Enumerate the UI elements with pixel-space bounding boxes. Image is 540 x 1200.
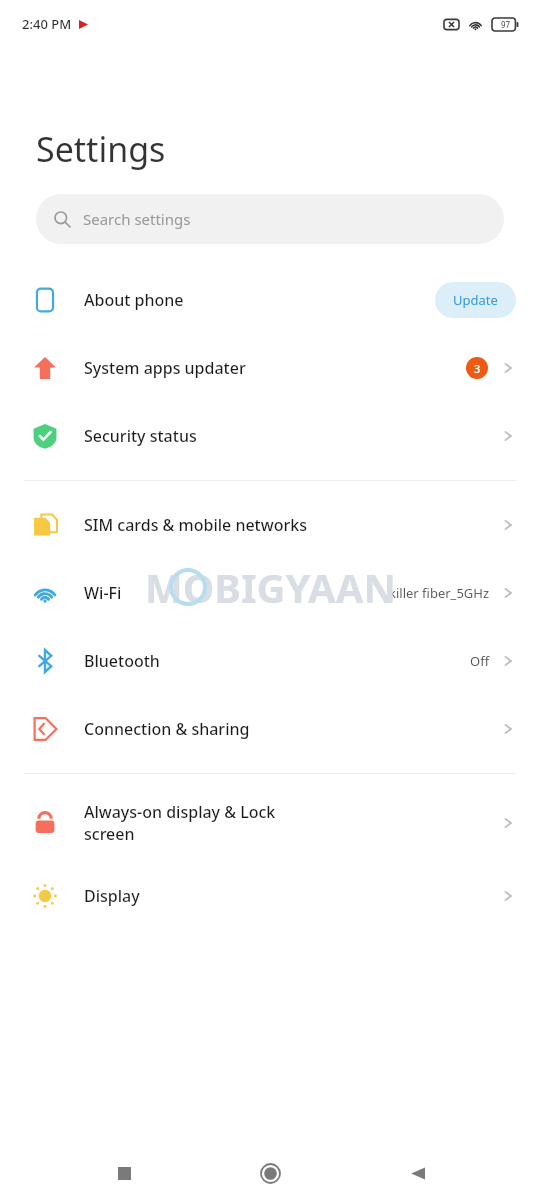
button[interactable]: Wi-Fi: [0, 559, 540, 627]
button[interactable]: Back: [394, 1150, 440, 1196]
button[interactable]: Update: [435, 282, 516, 318]
staticText: Update: [453, 291, 498, 309]
button[interactable]: Bluetooth: [0, 627, 540, 695]
staticText: System apps updater: [84, 357, 466, 379]
staticText: SIM cards & mobile networks: [84, 514, 500, 536]
button[interactable]: Search settings: [36, 194, 504, 244]
staticText: Search settings: [83, 209, 191, 229]
button[interactable]: SIM cards & mobile networks: [0, 491, 540, 559]
staticText: MOBIGYAAN: [145, 560, 396, 614]
staticText: About phone: [84, 289, 435, 311]
staticText: Settings: [36, 126, 166, 172]
button[interactable]: Security status: [0, 402, 540, 470]
staticText: Security status: [84, 425, 500, 447]
button[interactable]: Display: [0, 862, 540, 930]
button[interactable]: Always-on display & Lock screen: [0, 784, 540, 862]
staticText: 2:40 PM: [22, 15, 72, 33]
staticText: 97: [501, 19, 511, 30]
button[interactable]: Recent apps: [101, 1150, 147, 1196]
staticText: Connection & sharing: [84, 718, 500, 740]
button[interactable]: Home: [247, 1150, 293, 1196]
button[interactable]: About phone: [0, 266, 540, 334]
staticText: Off: [470, 652, 490, 670]
button[interactable]: Connection & sharing: [0, 695, 540, 763]
staticText: 3: [474, 361, 481, 376]
staticText: Display: [84, 885, 500, 907]
staticText: killer fiber_5GHz: [389, 584, 490, 602]
staticText: Always-on display & Lock screen: [84, 801, 500, 845]
staticText: Wi-Fi: [84, 582, 389, 604]
button[interactable]: System apps updater: [0, 334, 540, 402]
staticText: Bluetooth: [84, 650, 470, 672]
